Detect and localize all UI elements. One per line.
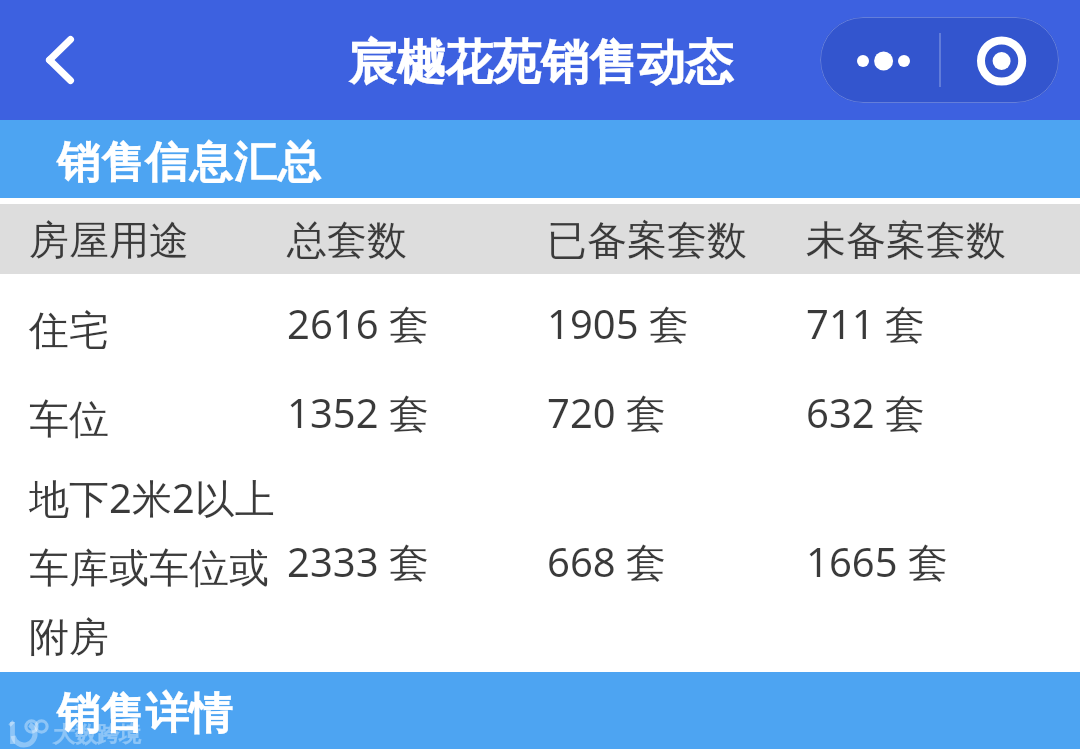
staticText: 未备案套数 (806, 215, 1006, 265)
staticText: 车位 (29, 394, 109, 444)
button[interactable]: 车位 (0, 373, 1080, 462)
staticText: 668 套 (547, 534, 667, 589)
button[interactable]: 销售详情 (0, 672, 1080, 749)
staticText: 地下2米2以上车库或车位或附房 (29, 470, 291, 662)
staticText: 销售信息汇总 (57, 136, 322, 190)
staticText: 总套数 (287, 215, 407, 265)
button[interactable]: 住宅 (0, 284, 1080, 373)
staticText: 住宅 (29, 305, 109, 355)
button[interactable]: Back (22, 22, 98, 98)
button[interactable]: 地下2米2以上车库或车位或附房 (0, 462, 1080, 672)
staticText: 720 套 (547, 385, 667, 440)
staticText: 销售详情 (57, 687, 234, 741)
button[interactable]: Close mini program (941, 17, 1059, 103)
staticText: 房屋用途 (29, 215, 189, 265)
staticText: 2616 套 (287, 296, 429, 351)
staticText: 大数跨境 (53, 721, 141, 749)
button[interactable]: 房屋用途 (0, 204, 1080, 274)
staticText: 711 套 (806, 296, 926, 351)
staticText: 1665 套 (806, 534, 948, 589)
staticText: 已备案套数 (547, 215, 747, 265)
staticText: 1352 套 (287, 385, 429, 440)
staticText: 宸樾花苑销售动态 (349, 33, 733, 93)
staticText: 1905 套 (547, 296, 689, 351)
staticText: 2333 套 (287, 534, 429, 589)
button[interactable]: More options (820, 17, 939, 103)
staticText: 632 套 (806, 385, 926, 440)
button[interactable]: 销售信息汇总 (0, 120, 1080, 198)
